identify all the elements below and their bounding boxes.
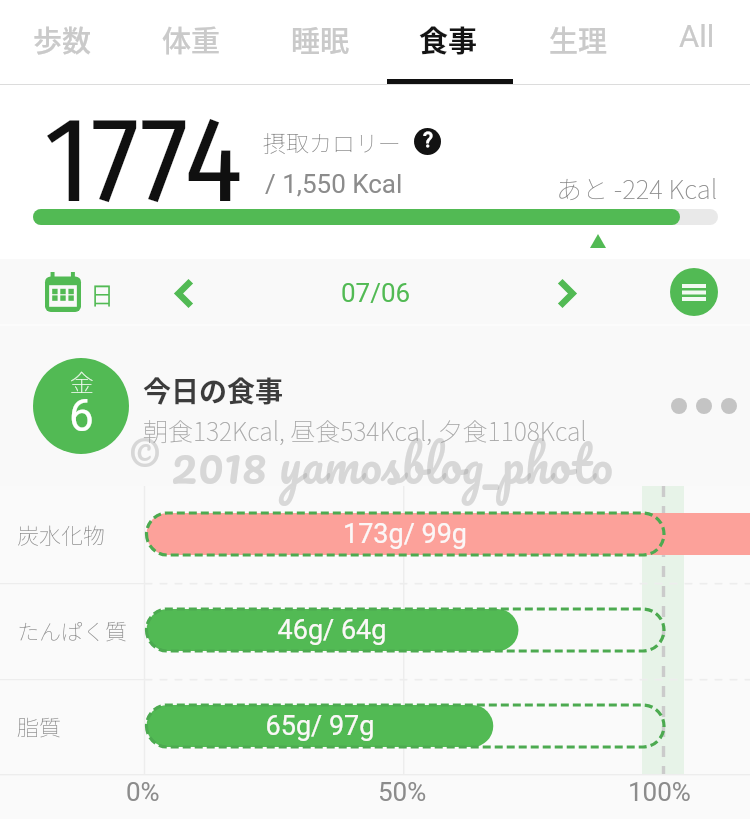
button[interactable]: Menu [670,268,718,316]
staticText: たんぱく質 [17,614,128,646]
staticText: 体重 [162,18,221,60]
staticText: / 1,550 Kcal [265,169,403,199]
staticText: 0% [126,777,160,807]
staticText: 朝食132Kcal, 昼食534Kcal, 夕食1108Kcal [143,412,587,448]
button[interactable]: 睡眠 [258,0,382,84]
staticText: 生理 [549,18,608,60]
staticText: 1774 [44,89,243,233]
button[interactable]: Next day [543,269,591,317]
staticText: ? [423,128,433,153]
staticText: 脂質 [17,710,62,742]
staticText: 07/06 [341,278,411,308]
button[interactable]: Previous day [159,269,207,317]
staticText: 100% [628,777,691,807]
staticText: 日 [90,276,114,311]
staticText: 金 [70,364,94,399]
button[interactable]: All [635,0,750,84]
staticText: 6 [69,390,94,442]
staticText: 50% [378,777,427,807]
button[interactable]: 食事 [386,0,510,84]
button[interactable]: 金 [0,326,750,486]
button[interactable]: More options [668,380,740,432]
button[interactable]: 生理 [516,0,640,84]
button[interactable]: 体重 [129,0,253,84]
staticText: 摂取カロリー [263,125,401,158]
button[interactable]: 歩数 [0,0,124,84]
staticText: All [679,18,715,54]
staticText: 46g/ 64g [222,614,442,646]
button[interactable]: Help [414,128,441,155]
staticText: © 2018 yamosblog_photo [127,421,613,505]
button[interactable]: Day view [45,272,114,312]
staticText: 睡眠 [291,18,350,60]
staticText: 173g/ 99g [295,518,515,550]
staticText: 歩数 [33,18,92,60]
staticText: 今日の食事 [143,370,284,411]
staticText: 炭水化物 [17,518,106,550]
staticText: 65g/ 97g [210,710,430,742]
staticText: あと -224 Kcal [556,169,718,207]
staticText: 食事 [419,18,478,60]
